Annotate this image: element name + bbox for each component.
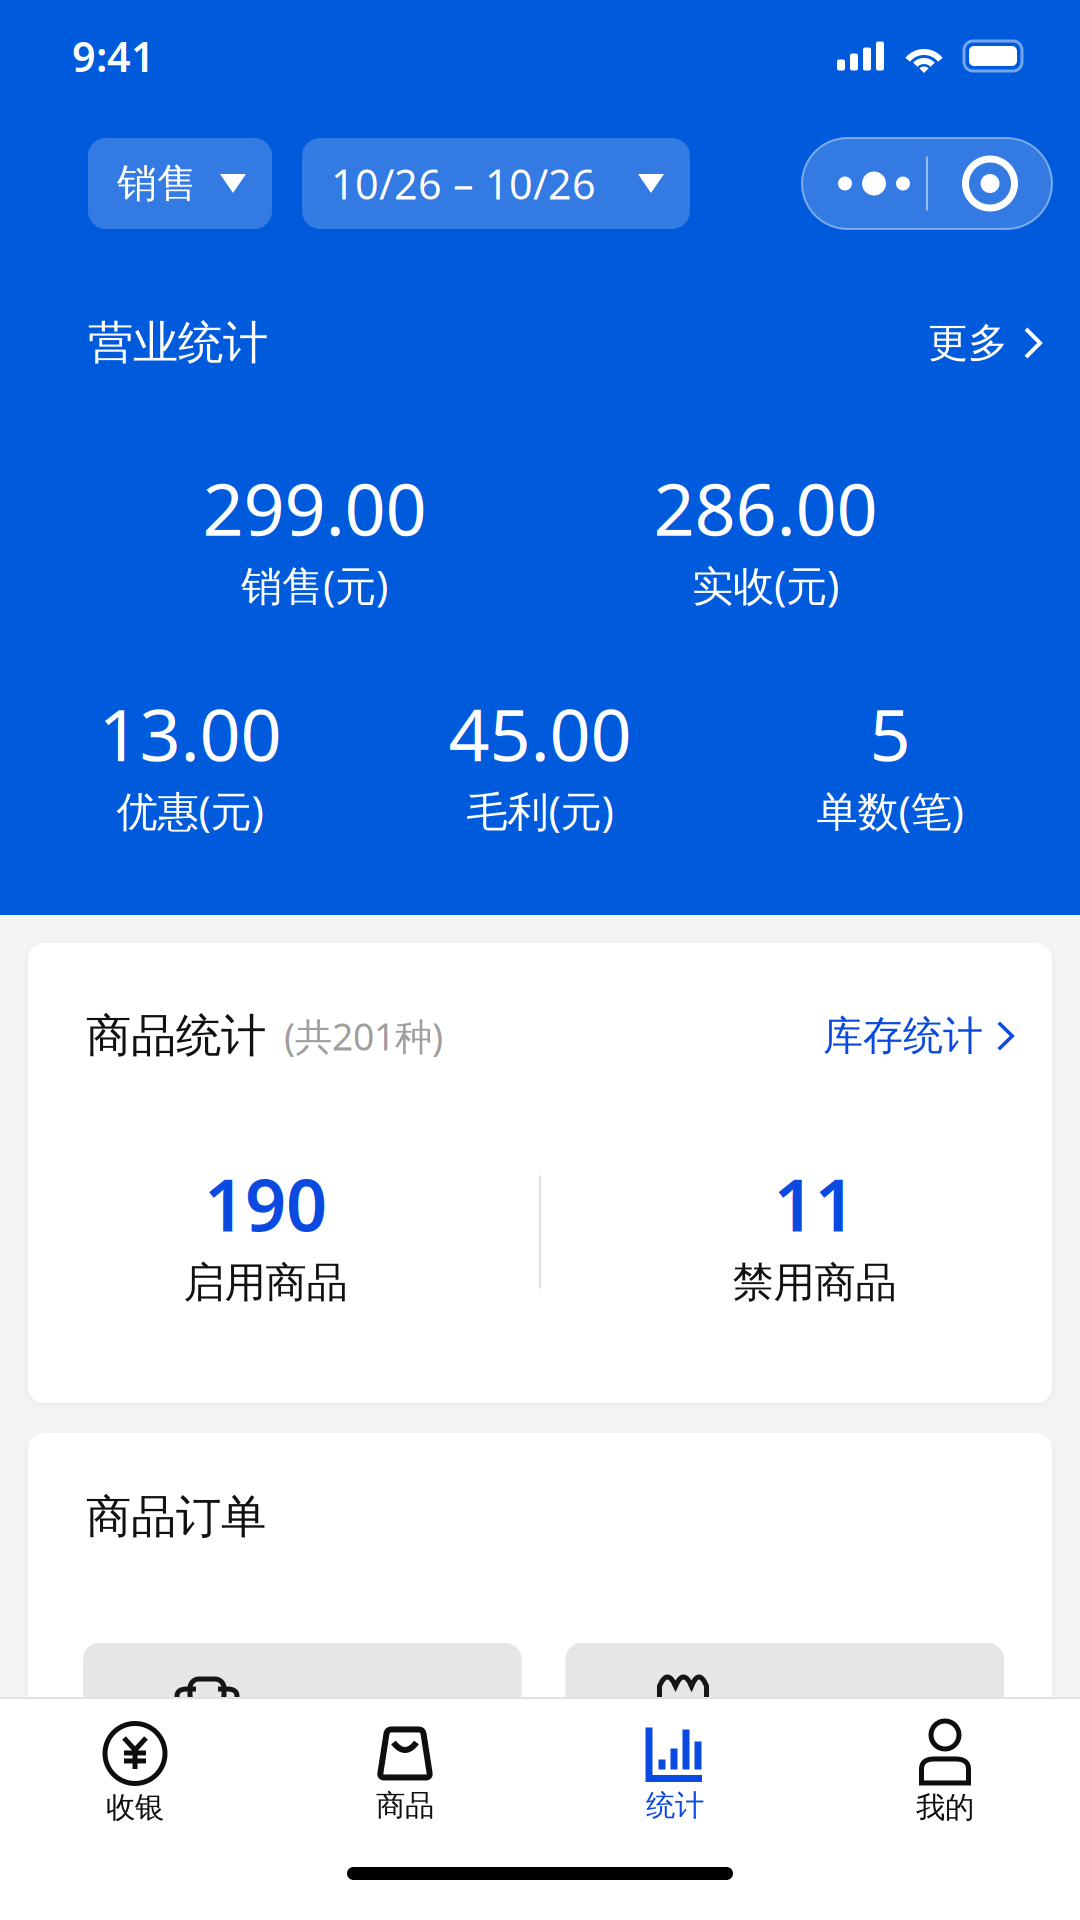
- staticText: 销售(元): [241, 558, 388, 612]
- staticText: 11: [773, 1156, 855, 1251]
- button[interactable]: 10/26 – 10/26: [302, 138, 690, 229]
- staticText: 毛利(元): [466, 783, 613, 838]
- staticText: 商品: [376, 1787, 434, 1823]
- staticText: 单数(笔): [816, 783, 963, 838]
- staticText: 更多: [928, 318, 1008, 367]
- staticText: 禁用商品: [732, 1257, 896, 1308]
- staticText: 销售: [117, 159, 197, 208]
- button[interactable]: 我的: [810, 1709, 1080, 1839]
- button[interactable]: [83, 1643, 521, 1823]
- button[interactable]: 销售: [88, 138, 272, 229]
- button[interactable]: 收银: [0, 1709, 270, 1839]
- staticText: 13.00: [98, 685, 281, 781]
- staticText: 9:41: [72, 29, 155, 83]
- staticText: 库存统计: [823, 1011, 983, 1060]
- staticText: (共201种): [284, 1011, 443, 1061]
- staticText: 299.00: [202, 460, 426, 556]
- staticText: 190: [204, 1156, 327, 1251]
- button[interactable]: [565, 1643, 1004, 1823]
- staticText: 5: [869, 685, 910, 781]
- staticText: 营业统计: [88, 315, 268, 371]
- staticText: 我的: [916, 1789, 974, 1825]
- button[interactable]: Close mini app: [928, 139, 1052, 228]
- button[interactable]: 商品: [270, 1709, 540, 1839]
- staticText: 统计: [646, 1787, 704, 1823]
- staticText: 优惠(元): [116, 783, 263, 838]
- staticText: 45.00: [448, 685, 631, 781]
- staticText: 286.00: [653, 460, 877, 556]
- staticText: 收银: [106, 1789, 164, 1825]
- staticText: 商品订单: [86, 1489, 266, 1545]
- staticText: 10/26 – 10/26: [331, 156, 596, 211]
- staticText: 启用商品: [183, 1257, 347, 1308]
- button[interactable]: 库存统计: [823, 1010, 1014, 1062]
- button[interactable]: 更多: [928, 315, 1042, 371]
- button[interactable]: 统计: [540, 1709, 810, 1839]
- button[interactable]: More options: [802, 139, 926, 228]
- staticText: 实收(元): [692, 558, 839, 612]
- staticText: 商品统计: [86, 1008, 266, 1064]
